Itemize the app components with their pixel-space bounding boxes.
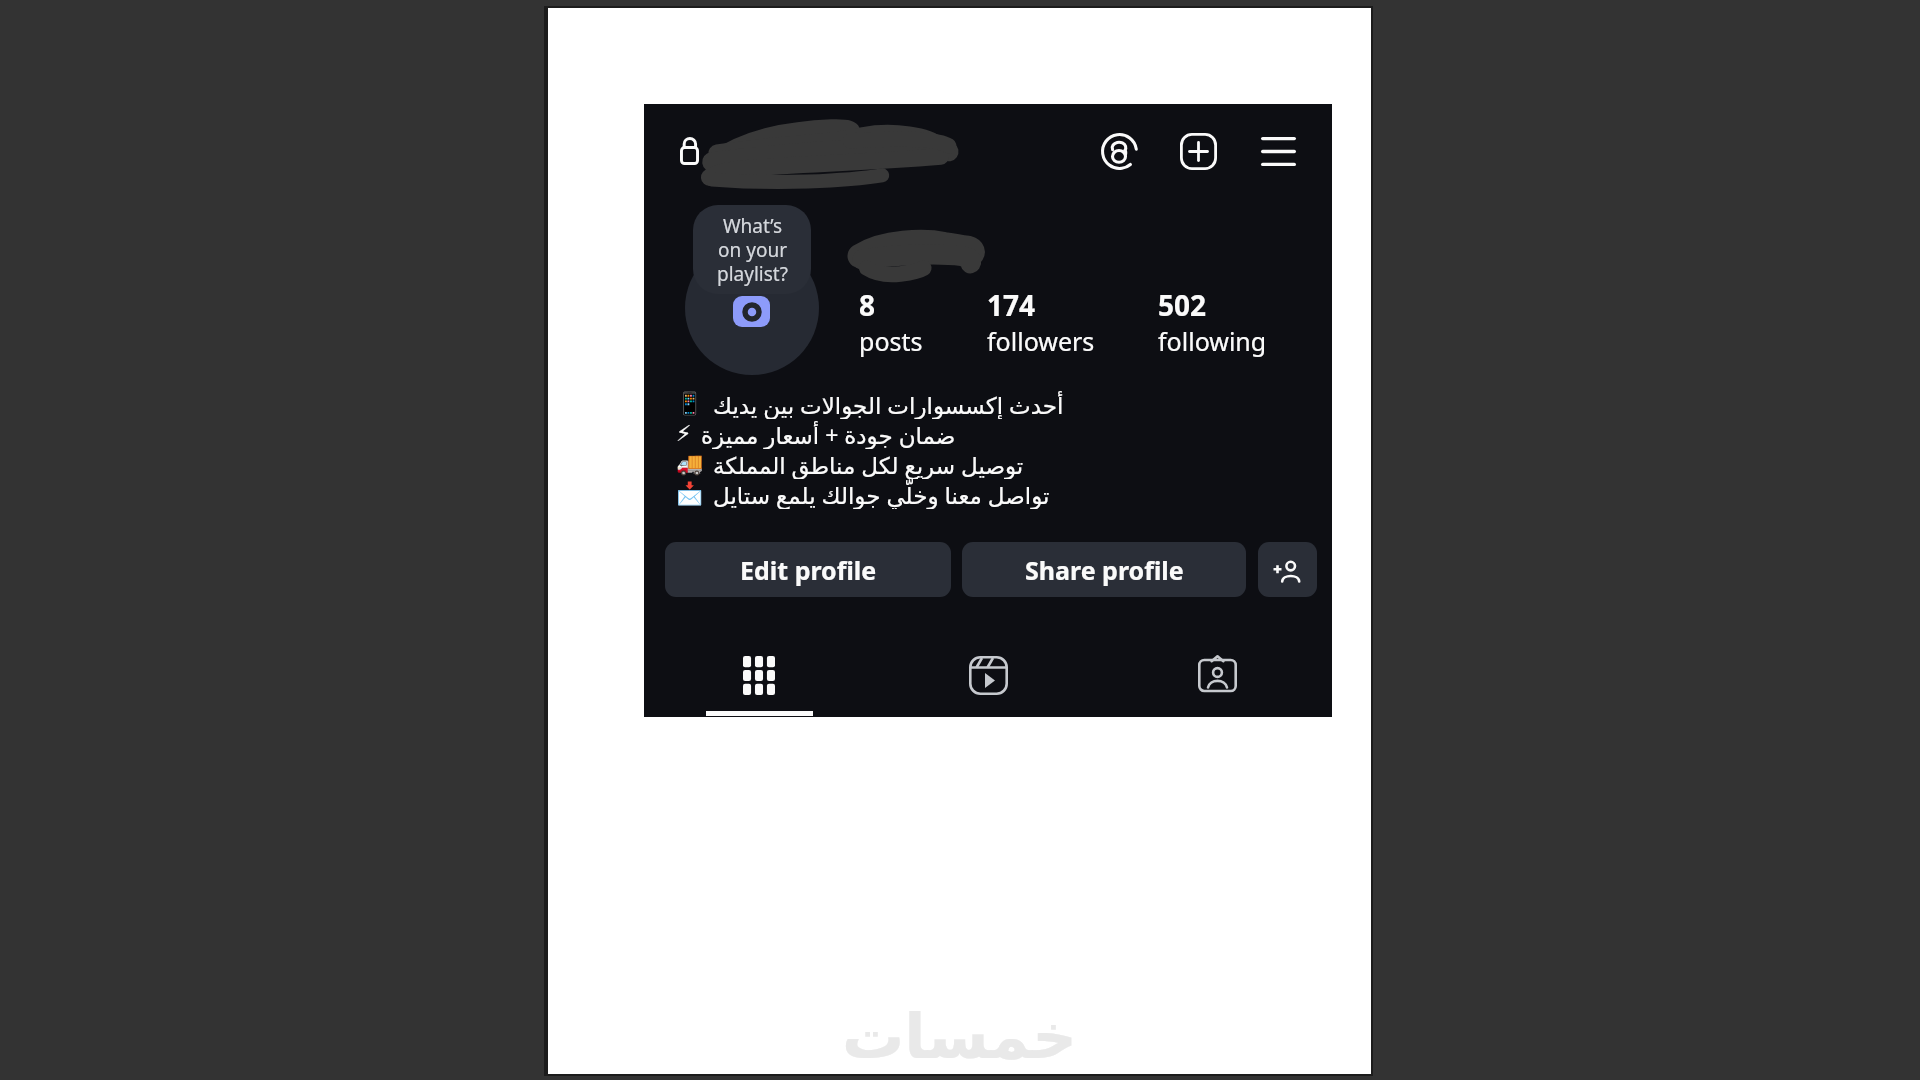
button[interactable]: What’s on your playlist? <box>693 205 811 294</box>
staticText: 174 <box>987 286 1036 324</box>
staticText: خمسات <box>842 1000 1077 1072</box>
button[interactable]: Reels <box>874 644 1103 707</box>
button[interactable]: Posts grid <box>644 644 874 707</box>
staticText: Edit profile <box>740 553 877 587</box>
staticText: What’s on your playlist? <box>717 213 788 286</box>
button[interactable]: Profile photo <box>685 241 819 375</box>
button[interactable]: Threads <box>1094 126 1144 176</box>
staticText: ضمان جودة + أسعار مميزة <box>701 419 956 449</box>
staticText: أحدث إكسسوارات الجوالات بين يديك <box>713 389 1064 419</box>
staticText: following <box>1158 324 1267 358</box>
button[interactable]: New post <box>1173 126 1223 176</box>
staticText: followers <box>987 324 1095 358</box>
staticText: تواصل معنا وخلّي جوالك يلمع ستايل <box>713 479 1050 509</box>
button[interactable]: Menu <box>1253 126 1303 176</box>
button[interactable]: Discover people <box>1258 542 1317 597</box>
staticText: posts <box>859 324 923 358</box>
staticText: 8 <box>859 286 876 324</box>
button[interactable]: Edit profile <box>665 542 951 597</box>
button[interactable]: Tagged <box>1103 644 1332 707</box>
staticText: ⚡ <box>676 421 692 447</box>
staticText: Share profile <box>1025 553 1184 587</box>
staticText: 📱 <box>676 391 704 417</box>
staticText: توصيل سريع لكل مناطق المملكة <box>713 449 1024 479</box>
staticText: 502 <box>1158 286 1207 324</box>
button[interactable]: Private account <box>670 132 708 170</box>
staticText: 📩 <box>676 481 704 507</box>
button[interactable]: Share profile <box>962 542 1246 597</box>
staticText: 🚚 <box>676 451 704 477</box>
